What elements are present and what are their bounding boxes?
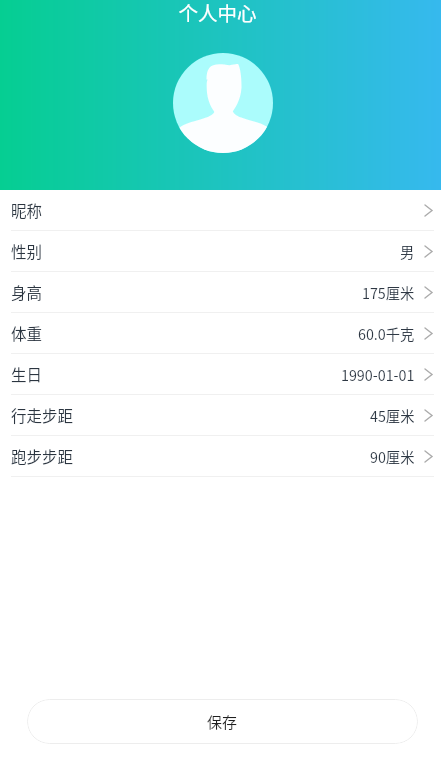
staticText: 45厘米 <box>370 405 415 426</box>
button[interactable]: 生日 <box>0 354 441 394</box>
button[interactable]: 行走步距 <box>0 395 441 435</box>
staticText: 个人中心 <box>0 0 438 26</box>
staticText: 跑步步距 <box>11 445 74 467</box>
staticText: 昵称 <box>11 199 43 221</box>
staticText: 90厘米 <box>370 446 415 467</box>
staticText: 1990-01-01 <box>341 364 415 385</box>
staticText: 体重 <box>11 322 43 344</box>
staticText: 身高 <box>11 281 43 303</box>
button[interactable]: Change avatar <box>173 53 273 153</box>
staticText: 175厘米 <box>362 282 415 303</box>
button[interactable]: 跑步步距 <box>0 436 441 476</box>
button[interactable]: 身高 <box>0 272 441 312</box>
staticText: 生日 <box>11 363 43 385</box>
staticText: 行走步距 <box>11 404 74 426</box>
button[interactable]: 体重 <box>0 313 441 353</box>
button[interactable]: 昵称 <box>0 190 441 230</box>
button[interactable]: 保存 <box>27 699 418 744</box>
staticText: 性别 <box>11 240 43 262</box>
staticText: 男 <box>400 241 415 262</box>
staticText: 保存 <box>207 711 238 733</box>
staticText: 60.0千克 <box>358 323 415 344</box>
button[interactable]: 性别 <box>0 231 441 271</box>
